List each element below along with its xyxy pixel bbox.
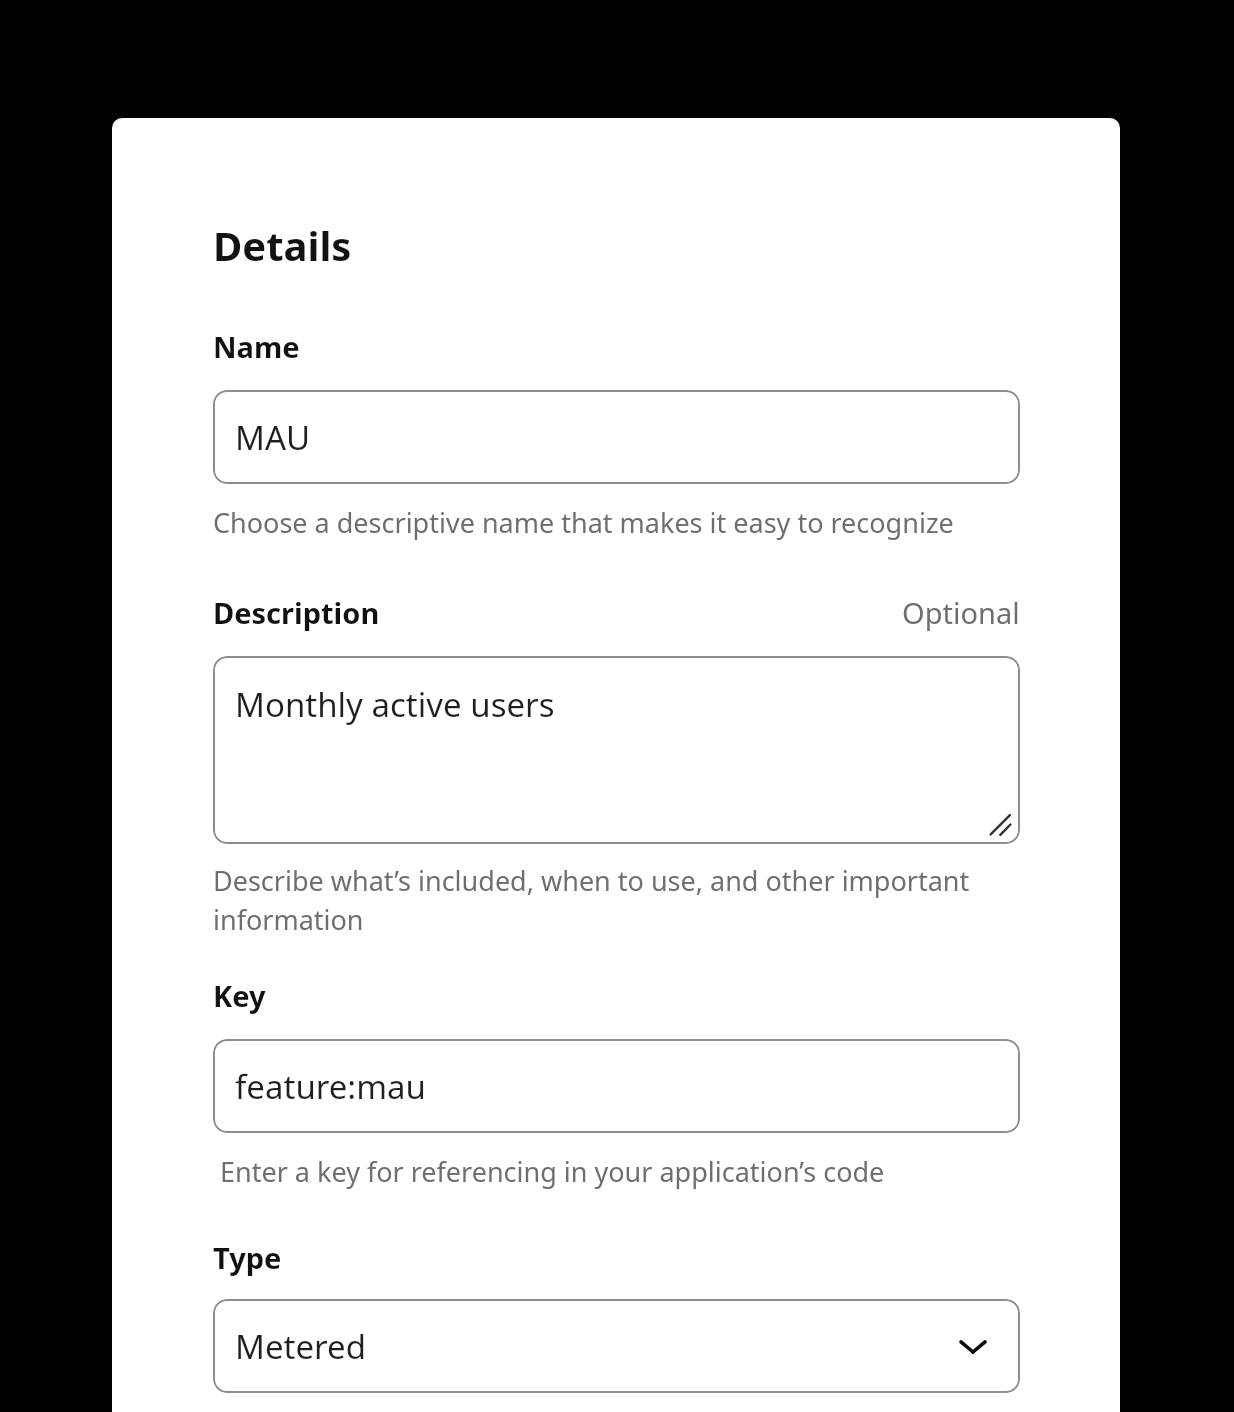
staticText: Monthly active users xyxy=(235,682,555,727)
staticText: Enter a key for referencing in your appl… xyxy=(213,1153,1020,1190)
staticText: Details xyxy=(213,218,352,272)
staticText: Key xyxy=(213,976,266,1015)
staticText: Optional xyxy=(902,593,1020,632)
button[interactable]: Type selector, Metered xyxy=(213,1299,1020,1393)
staticText: Name xyxy=(213,327,300,366)
staticText: Metered xyxy=(235,1324,366,1369)
staticText: MAU xyxy=(235,415,311,460)
staticText: feature:mau xyxy=(235,1064,426,1109)
staticText: Choose a descriptive name that makes it … xyxy=(213,504,1020,541)
staticText: Description xyxy=(213,593,380,632)
button[interactable]: Description input field xyxy=(213,656,1020,844)
button[interactable]: Name input field xyxy=(213,390,1020,484)
staticText: Describe what’s included, when to use, a… xyxy=(213,862,1020,938)
staticText: Type xyxy=(213,1238,282,1277)
button[interactable]: Key input field xyxy=(213,1039,1020,1133)
